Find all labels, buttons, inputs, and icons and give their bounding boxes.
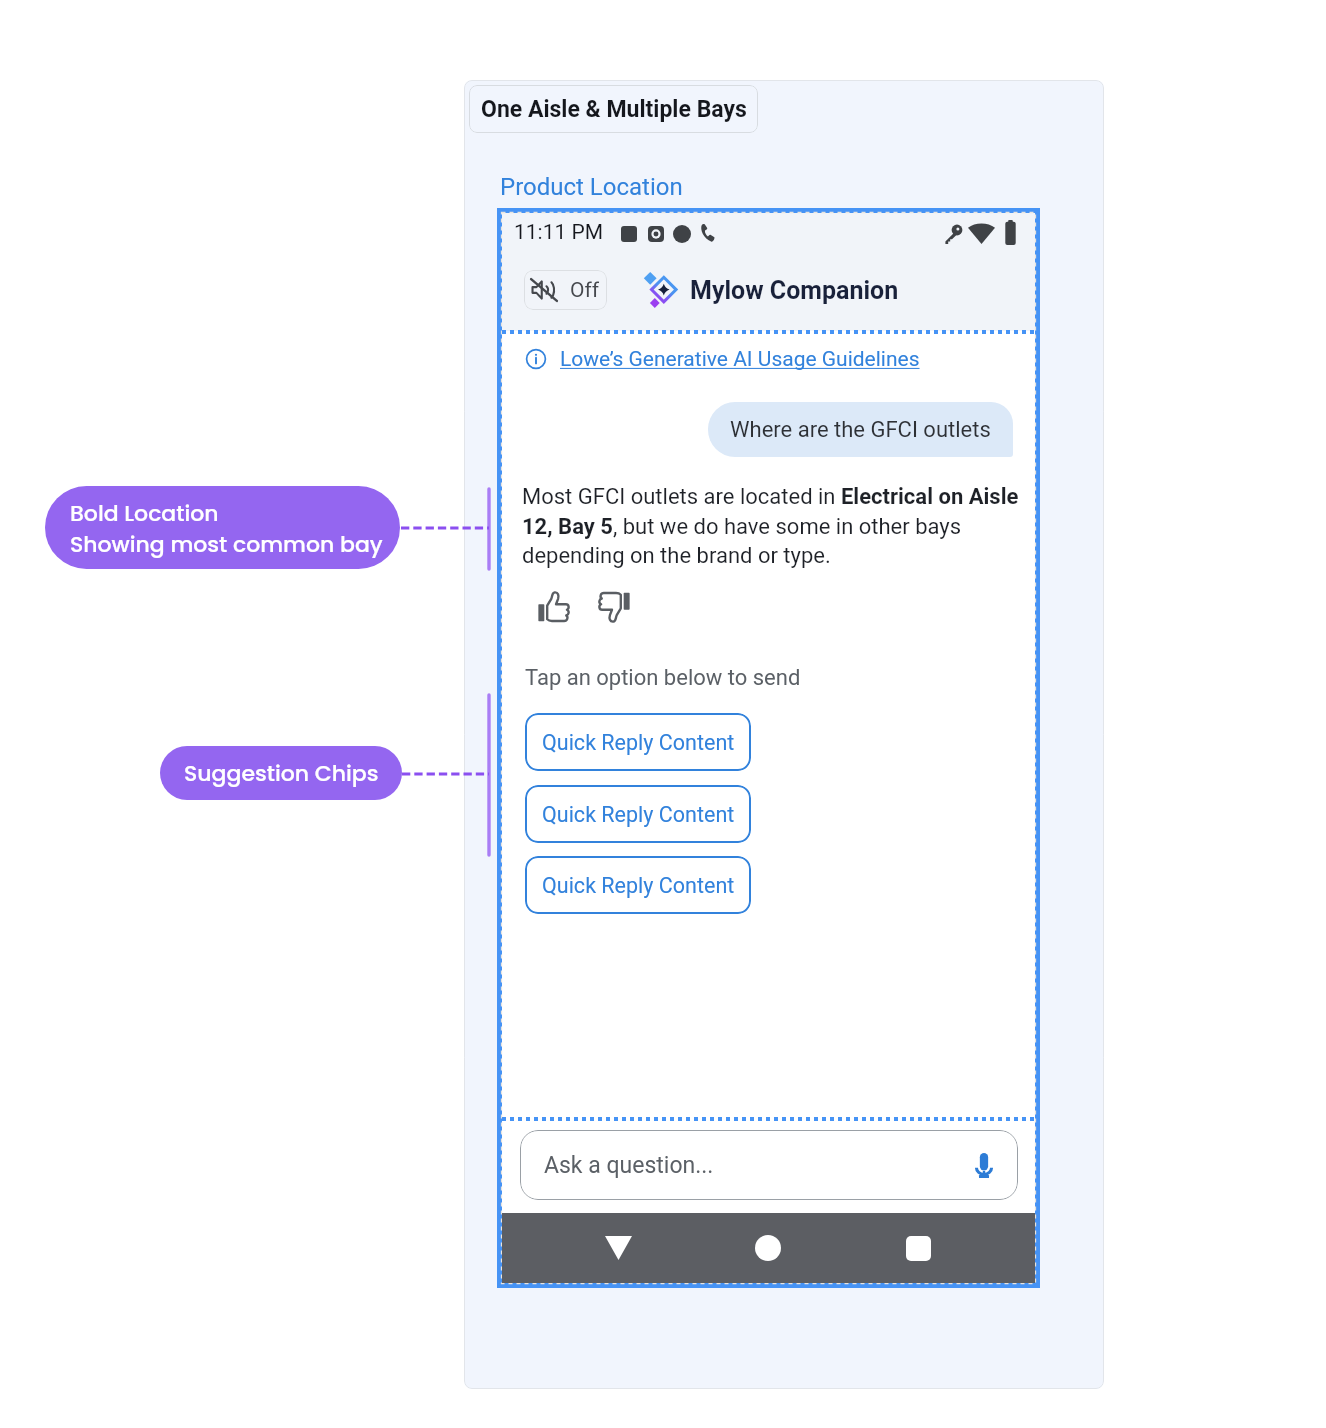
staticText: 11:11 PM xyxy=(514,220,604,245)
button[interactable]: Lowe’s Generative AI Usage Guidelines xyxy=(526,345,920,373)
staticText: Lowe’s Generative AI Usage Guidelines xyxy=(560,347,920,372)
staticText: Quick Reply Content xyxy=(542,802,735,827)
button[interactable]: Quick Reply Content xyxy=(525,785,751,843)
button[interactable]: Voice input xyxy=(968,1149,1000,1181)
button[interactable]: One Aisle & Multiple Bays xyxy=(469,85,758,133)
button[interactable]: Ask a question... xyxy=(520,1130,1018,1200)
button[interactable]: Where are the GFCI outlets xyxy=(708,402,1013,457)
staticText: Bold Location xyxy=(70,498,219,529)
staticText: Most GFCI outlets are located in Electri… xyxy=(522,484,1022,569)
button[interactable]: Back xyxy=(601,1231,635,1265)
staticText: Product Location xyxy=(500,173,683,201)
staticText: Where are the GFCI outlets xyxy=(730,417,991,443)
button[interactable]: Recent apps xyxy=(901,1231,935,1265)
button[interactable]: Quick Reply Content xyxy=(525,713,751,771)
staticText: Mylow Companion xyxy=(690,276,899,305)
staticText: Quick Reply Content xyxy=(542,873,735,898)
staticText: Showing most common bay xyxy=(70,529,383,560)
button[interactable]: Off xyxy=(524,270,607,310)
button[interactable]: Thumbs up xyxy=(537,590,571,624)
button[interactable]: Suggestion Chips xyxy=(160,746,402,800)
staticText: Quick Reply Content xyxy=(542,730,735,755)
staticText: Tap an option below to send xyxy=(525,665,801,691)
button[interactable]: Thumbs down xyxy=(597,590,631,624)
button[interactable]: Quick Reply Content xyxy=(525,856,751,914)
button[interactable]: Home xyxy=(751,1231,785,1265)
button[interactable]: Bold Location xyxy=(45,486,400,569)
staticText: Off xyxy=(570,278,600,303)
staticText: Ask a question... xyxy=(544,1152,714,1179)
staticText: Suggestion Chips xyxy=(184,758,379,789)
staticText: One Aisle & Multiple Bays xyxy=(481,96,747,123)
